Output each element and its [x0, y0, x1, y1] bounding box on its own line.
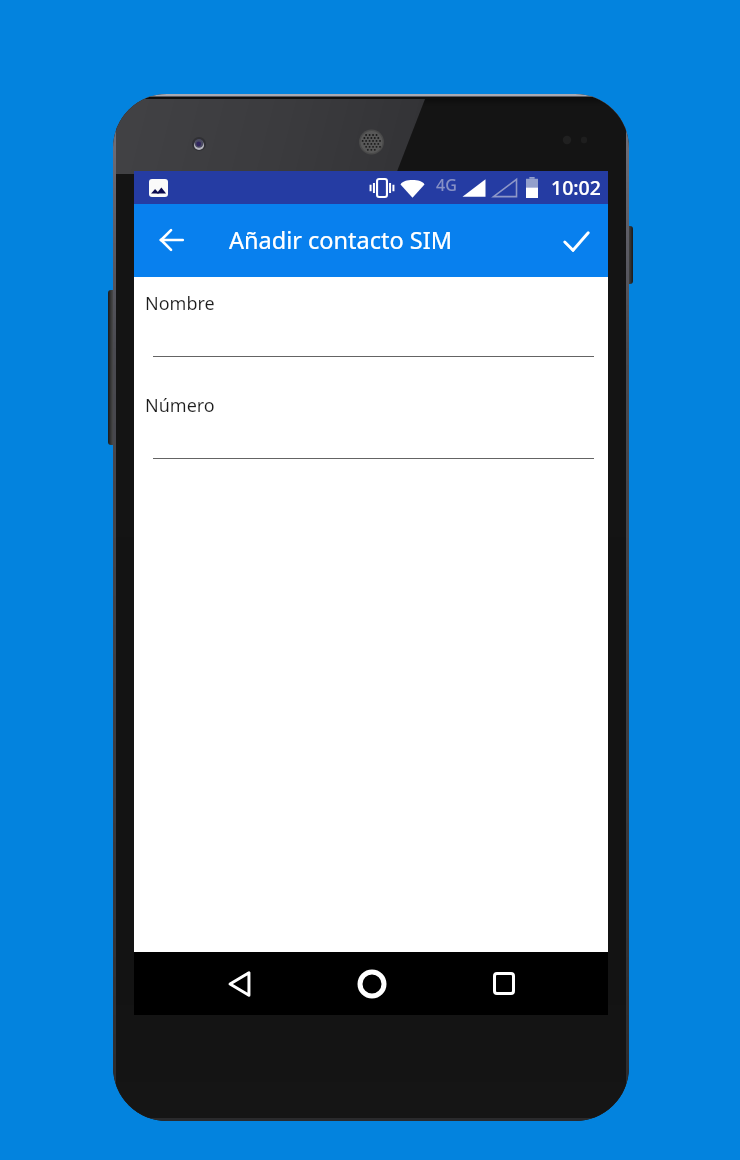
button[interactable]: Recent apps	[479, 959, 528, 1008]
button[interactable]: Home	[347, 959, 396, 1008]
staticText: Nombre	[145, 291, 215, 316]
staticText: 4G	[436, 174, 457, 196]
staticText: 10:02	[551, 174, 601, 201]
button[interactable]: Save contact	[552, 217, 600, 265]
button[interactable]: Back	[147, 216, 195, 264]
staticText: Número	[145, 393, 215, 418]
button[interactable]: Back	[215, 959, 264, 1008]
staticText: Añadir contacto SIM	[229, 224, 453, 256]
